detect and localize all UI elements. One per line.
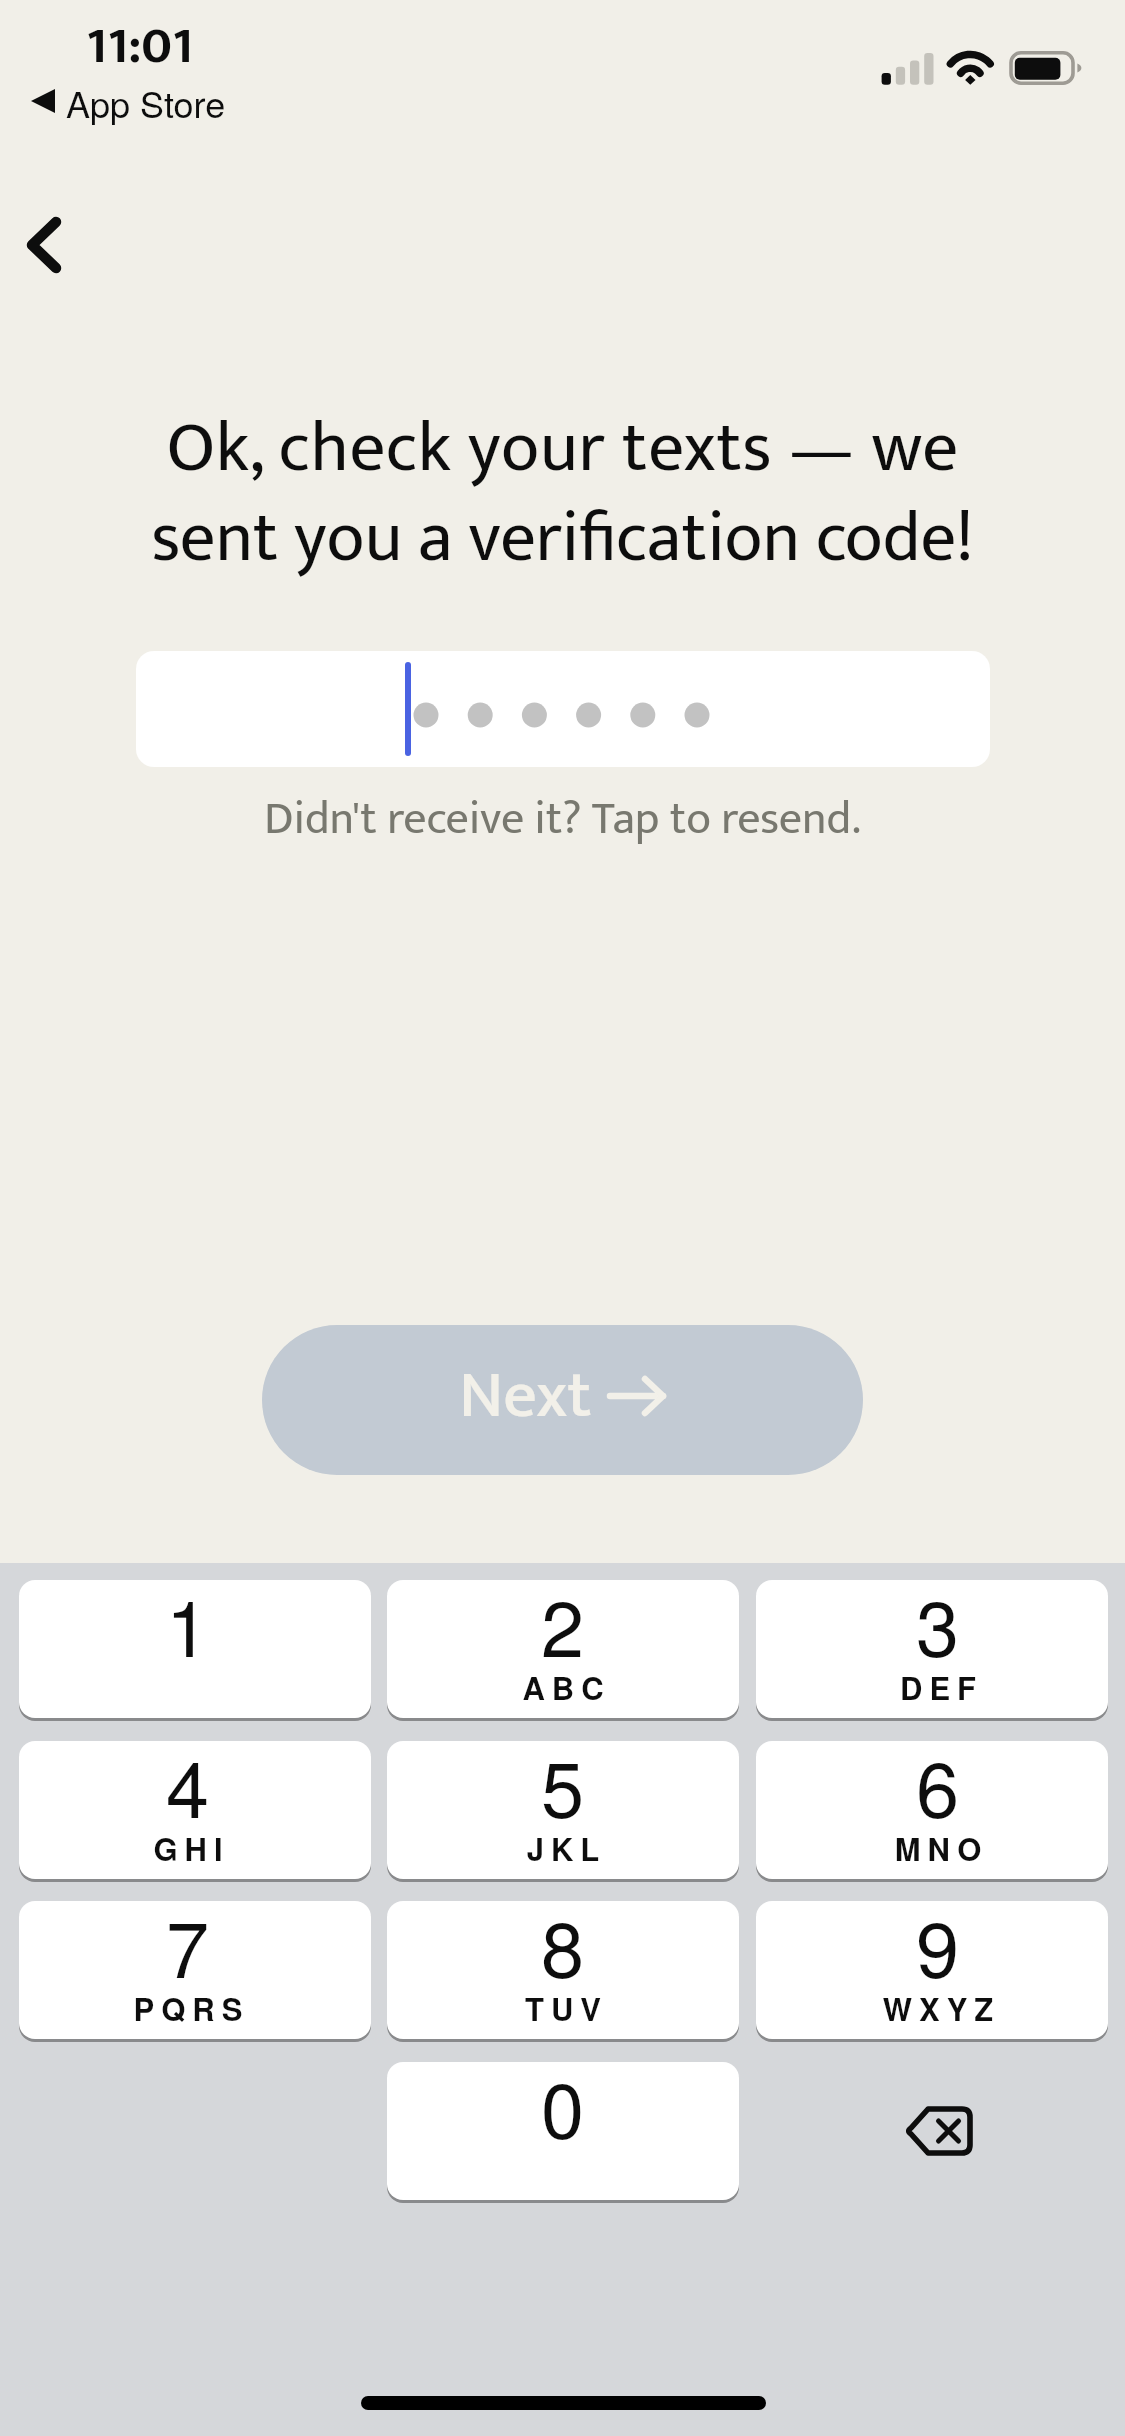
staticText: 5 xyxy=(375,1729,750,1824)
button[interactable]: Delete xyxy=(763,2062,1115,2200)
button[interactable]: 3 xyxy=(750,1580,1125,1721)
staticText: GHI xyxy=(4,1826,379,1871)
staticText: 7 xyxy=(0,1889,375,1984)
button[interactable]: 6 xyxy=(750,1741,1125,1882)
staticText: Next xyxy=(459,1341,592,1451)
staticText: 9 xyxy=(750,1889,1125,1984)
button[interactable]: 2 xyxy=(375,1580,750,1721)
button[interactable]: 5 xyxy=(375,1741,750,1882)
button[interactable]: 9 xyxy=(750,1901,1125,2042)
staticText: 0 xyxy=(375,2050,750,2145)
staticText: WXYZ xyxy=(754,1986,1125,2031)
staticText: MNO xyxy=(754,1826,1125,1871)
staticText: sent you a verification code! xyxy=(0,480,1125,597)
staticText: 11:01 xyxy=(86,3,194,89)
staticText: JKL xyxy=(379,1826,754,1871)
staticText: 6 xyxy=(750,1729,1125,1824)
staticText: TUV xyxy=(379,1986,754,2031)
staticText: PQRS xyxy=(4,1986,379,2031)
button[interactable]: 4 xyxy=(0,1741,375,1882)
staticText: DEF xyxy=(754,1665,1125,1710)
button[interactable]: 1 xyxy=(0,1580,375,1721)
staticText: 1 xyxy=(0,1568,375,1663)
button[interactable]: 7 xyxy=(0,1901,375,2042)
staticText: 4 xyxy=(0,1729,375,1824)
staticText: App Store xyxy=(66,77,226,129)
staticText: 3 xyxy=(750,1568,1125,1663)
staticText: 2 xyxy=(375,1568,750,1663)
button[interactable]: Didn't receive it? Tap to resend. xyxy=(0,781,1125,857)
staticText: ABC xyxy=(379,1665,754,1710)
staticText: Ok, check your texts — we xyxy=(0,390,1125,508)
button[interactable]: 8 xyxy=(375,1901,750,2042)
button[interactable]: Back xyxy=(0,185,103,305)
staticText: 8 xyxy=(375,1889,750,1984)
button[interactable] xyxy=(136,651,990,767)
button[interactable]: Next xyxy=(262,1325,863,1475)
button[interactable]: 0 xyxy=(375,2062,750,2203)
